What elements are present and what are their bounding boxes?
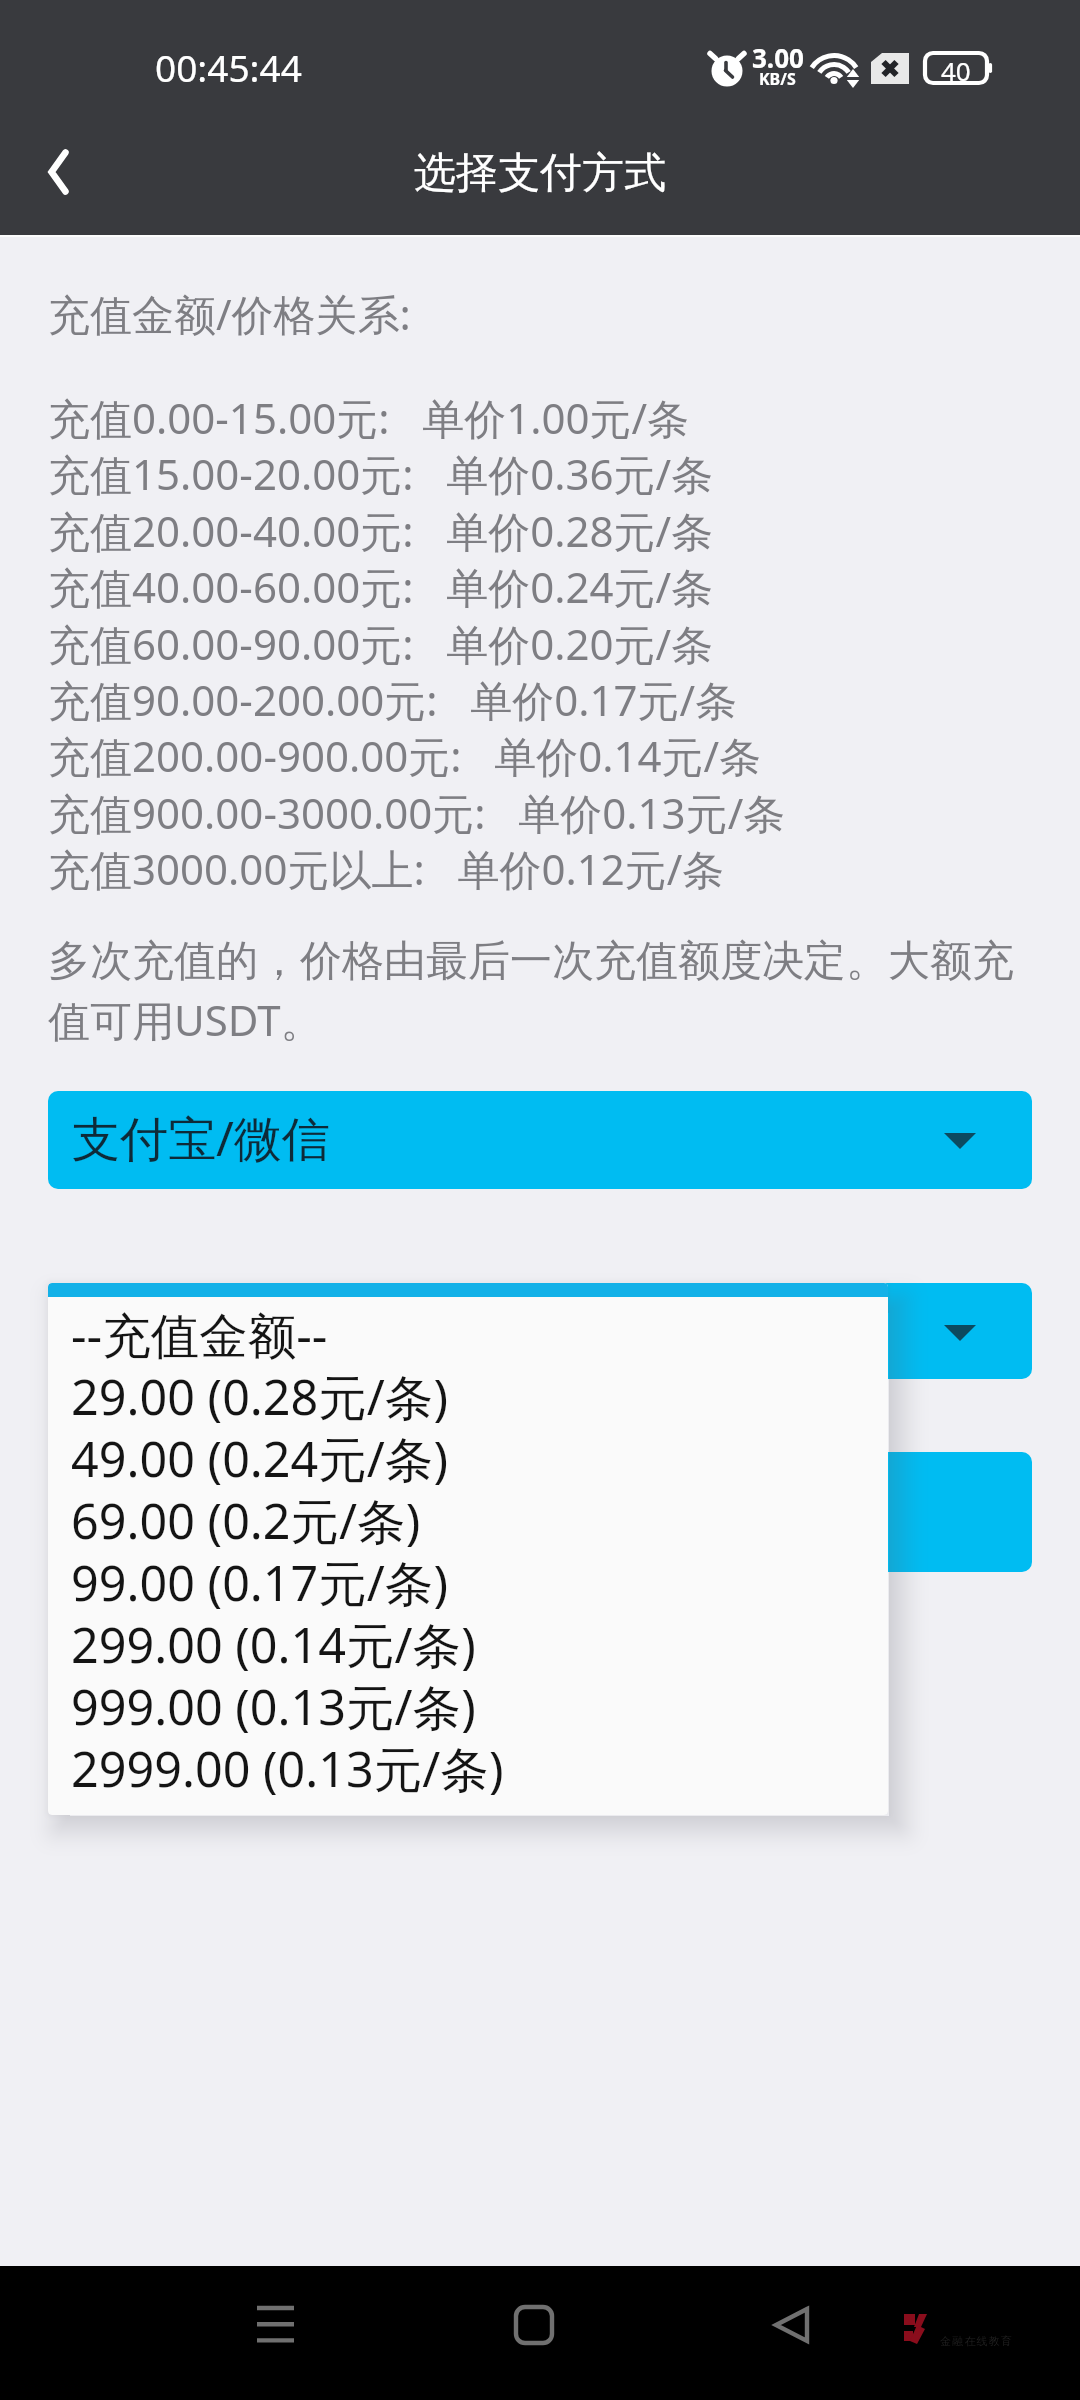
staticText: 充值900.00-3000.00元: 单价0.13元/条 [48,784,786,841]
button[interactable]: Recent apps [231,2280,321,2370]
staticText: 选择支付方式 [414,147,666,200]
staticText: 99.00 (0.17元/条) [71,1549,448,1611]
staticText: 充值0.00-15.00元: 单价1.00元/条 [48,389,690,446]
button[interactable]: 2999.00 (0.13元/条) [48,1729,888,1791]
button[interactable]: 选择充值金额 [48,1283,1032,1379]
button[interactable]: Back [746,2280,836,2370]
button[interactable]: Back [8,117,118,227]
staticText: 充值60.00-90.00元: 单价0.20元/条 [48,615,714,672]
button[interactable]: 49.00 (0.24元/条) [48,1419,888,1481]
staticText: 999.00 (0.13元/条) [71,1673,476,1735]
staticText: KB/S [759,68,796,90]
button[interactable]: 支付宝/微信 [48,1091,1032,1189]
staticText: 充值40.00-60.00元: 单价0.24元/条 [48,558,714,615]
staticText: 金融在线教育 [940,2334,1014,2348]
staticText: 充值15.00-20.00元: 单价0.36元/条 [48,445,714,502]
staticText: 3.00 [752,40,804,75]
staticText: 支付宝/微信 [72,1105,330,1171]
staticText: 值可用USDT。 [48,991,323,1048]
staticText: 00:45:44 [155,42,302,92]
button[interactable]: 999.00 (0.13元/条) [48,1667,888,1729]
staticText: 40 [941,53,971,88]
staticText: 多次充值的，价格由最后一次充值额度决定。大额充 [48,935,1014,988]
button[interactable]: 99.00 (0.17元/条) [48,1543,888,1605]
button[interactable]: 提交 [48,1452,1032,1572]
button[interactable]: 69.00 (0.2元/条) [48,1481,888,1543]
button[interactable]: 299.00 (0.14元/条) [48,1605,888,1667]
button[interactable]: Home [489,2280,579,2370]
staticText: 充值金额/价格关系: [48,285,411,342]
button[interactable]: 29.00 (0.28元/条) [48,1357,888,1419]
staticText: 299.00 (0.14元/条) [71,1611,476,1673]
staticText: 充值20.00-40.00元: 单价0.28元/条 [48,502,714,559]
staticText: 69.00 (0.2元/条) [71,1487,421,1549]
staticText: 充值200.00-900.00元: 单价0.14元/条 [48,727,762,784]
staticText: --充值金额-- [71,1301,328,1363]
staticText: 29.00 (0.28元/条) [71,1363,448,1425]
staticText: 充值90.00-200.00元: 单价0.17元/条 [48,671,738,728]
staticText: 2999.00 (0.13元/条) [71,1735,504,1797]
staticText: 充值3000.00元以上: 单价0.12元/条 [48,840,725,897]
button[interactable]: --充值金额-- [48,1295,888,1357]
staticText: 49.00 (0.24元/条) [71,1425,448,1487]
